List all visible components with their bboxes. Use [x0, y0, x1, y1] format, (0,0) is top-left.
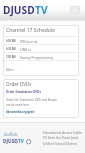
button[interactable]: 6:30 AM [3, 45, 79, 52]
staticText: DJUSD [3, 3, 35, 17]
staticText: Variety Programming [20, 55, 54, 59]
button[interactable]: 7:00 AM [3, 53, 79, 60]
button[interactable]: 6:00 AM [3, 37, 79, 44]
staticText: TV [35, 3, 48, 17]
button[interactable]: DJUSD [3, 131, 37, 145]
staticText: Channel 17 Schedule [6, 27, 55, 34]
staticText: TV [18, 138, 24, 145]
staticText: LINK tv [20, 47, 32, 51]
staticText: 6:00 AM [6, 39, 16, 42]
staticText: 6:30 AM [6, 47, 16, 50]
staticText: Order DVDs [6, 81, 32, 87]
button[interactable]: More ... [6, 68, 17, 72]
staticText: DW Journal [20, 39, 38, 43]
staticText: 7:00 AM [6, 55, 16, 58]
staticText: Order Graduation DVDs [6, 90, 41, 94]
staticText: DJUSD [3, 138, 18, 145]
staticText: Educational Access Cable TV from the Dav… [43, 130, 82, 146]
staticText: Orders for Graduation DVDs and Recaps ca… [6, 98, 57, 107]
button[interactable]: Menu [70, 6, 80, 14]
button[interactable]: davismedia.org/grad [6, 110, 34, 114]
button[interactable]: DJUSD [3, 1, 48, 19]
